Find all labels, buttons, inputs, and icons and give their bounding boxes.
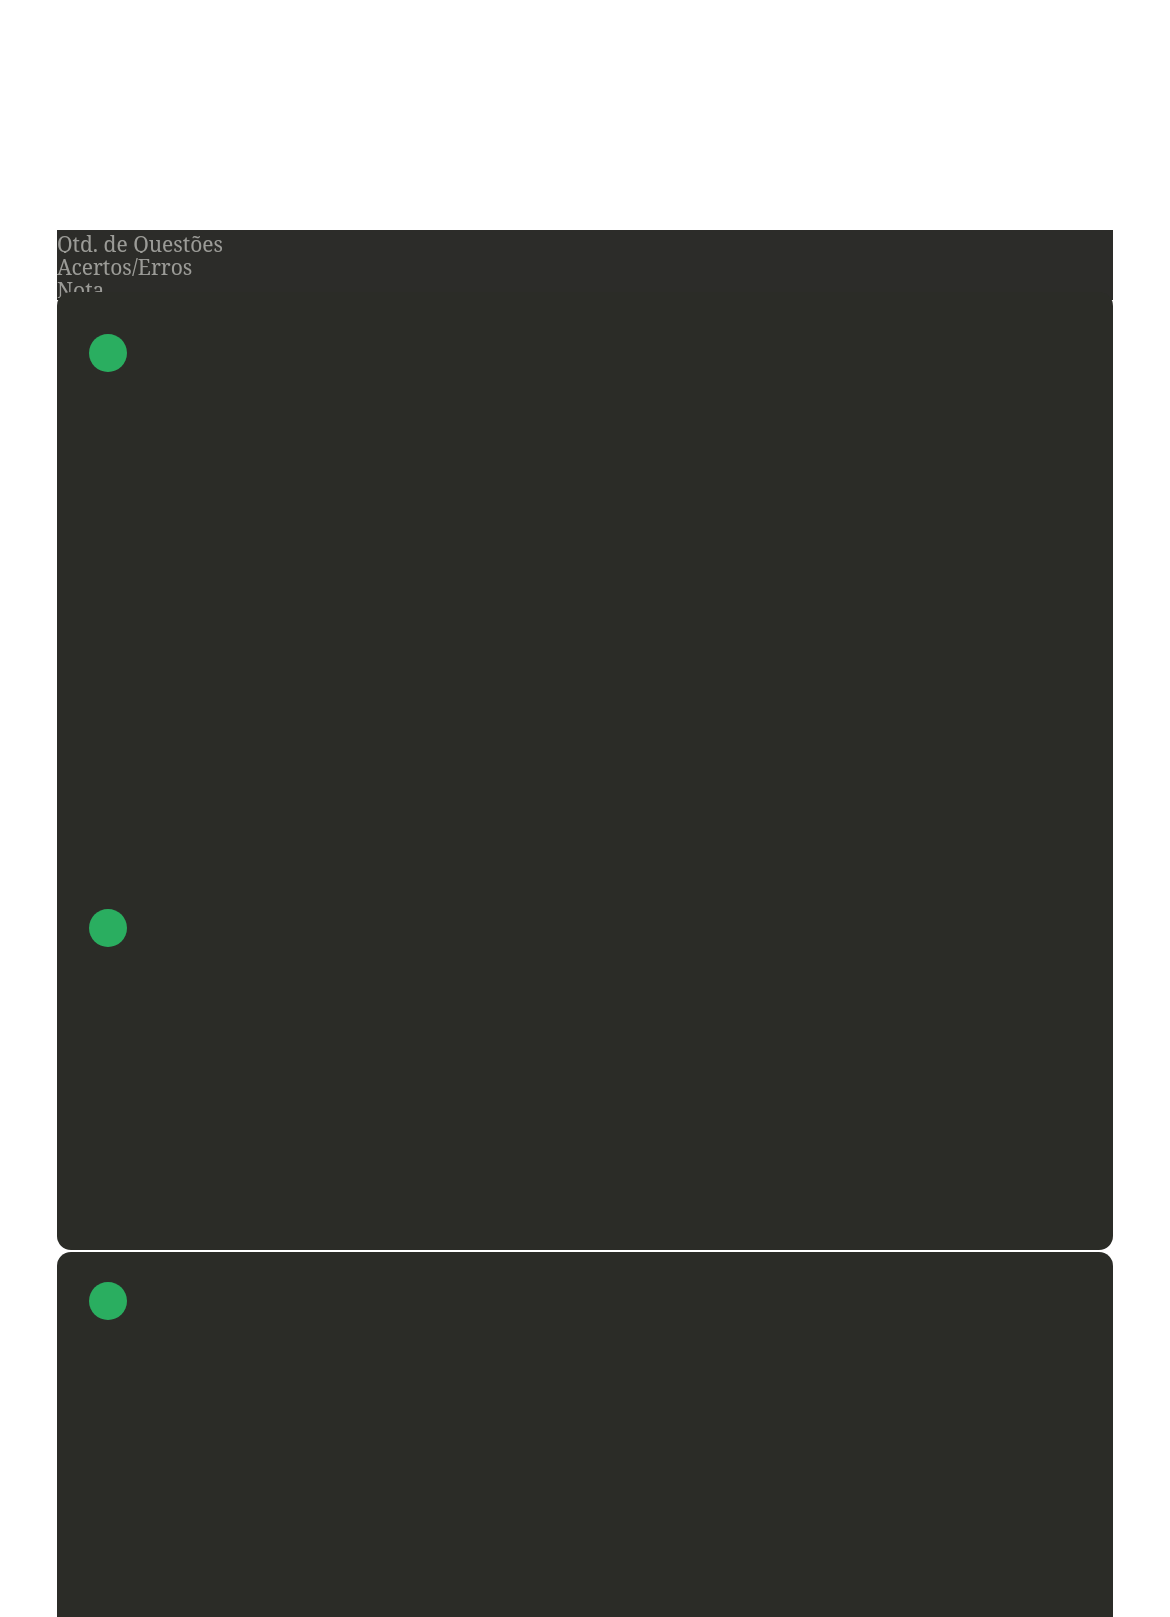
button[interactable]: Status concluído [89, 1282, 127, 1320]
button[interactable]: Status concluído [89, 334, 127, 372]
button[interactable]: Status concluído [57, 1252, 1113, 1617]
button[interactable]: Qtd. de Questões [57, 230, 1113, 300]
staticText: Qtd. de Questões [57, 230, 1113, 253]
staticText: Acertos/Erros [57, 253, 1113, 276]
staticText: Nota [57, 276, 1113, 299]
button[interactable]: Status concluído [57, 292, 1113, 1250]
button[interactable]: Status concluído [89, 909, 127, 947]
